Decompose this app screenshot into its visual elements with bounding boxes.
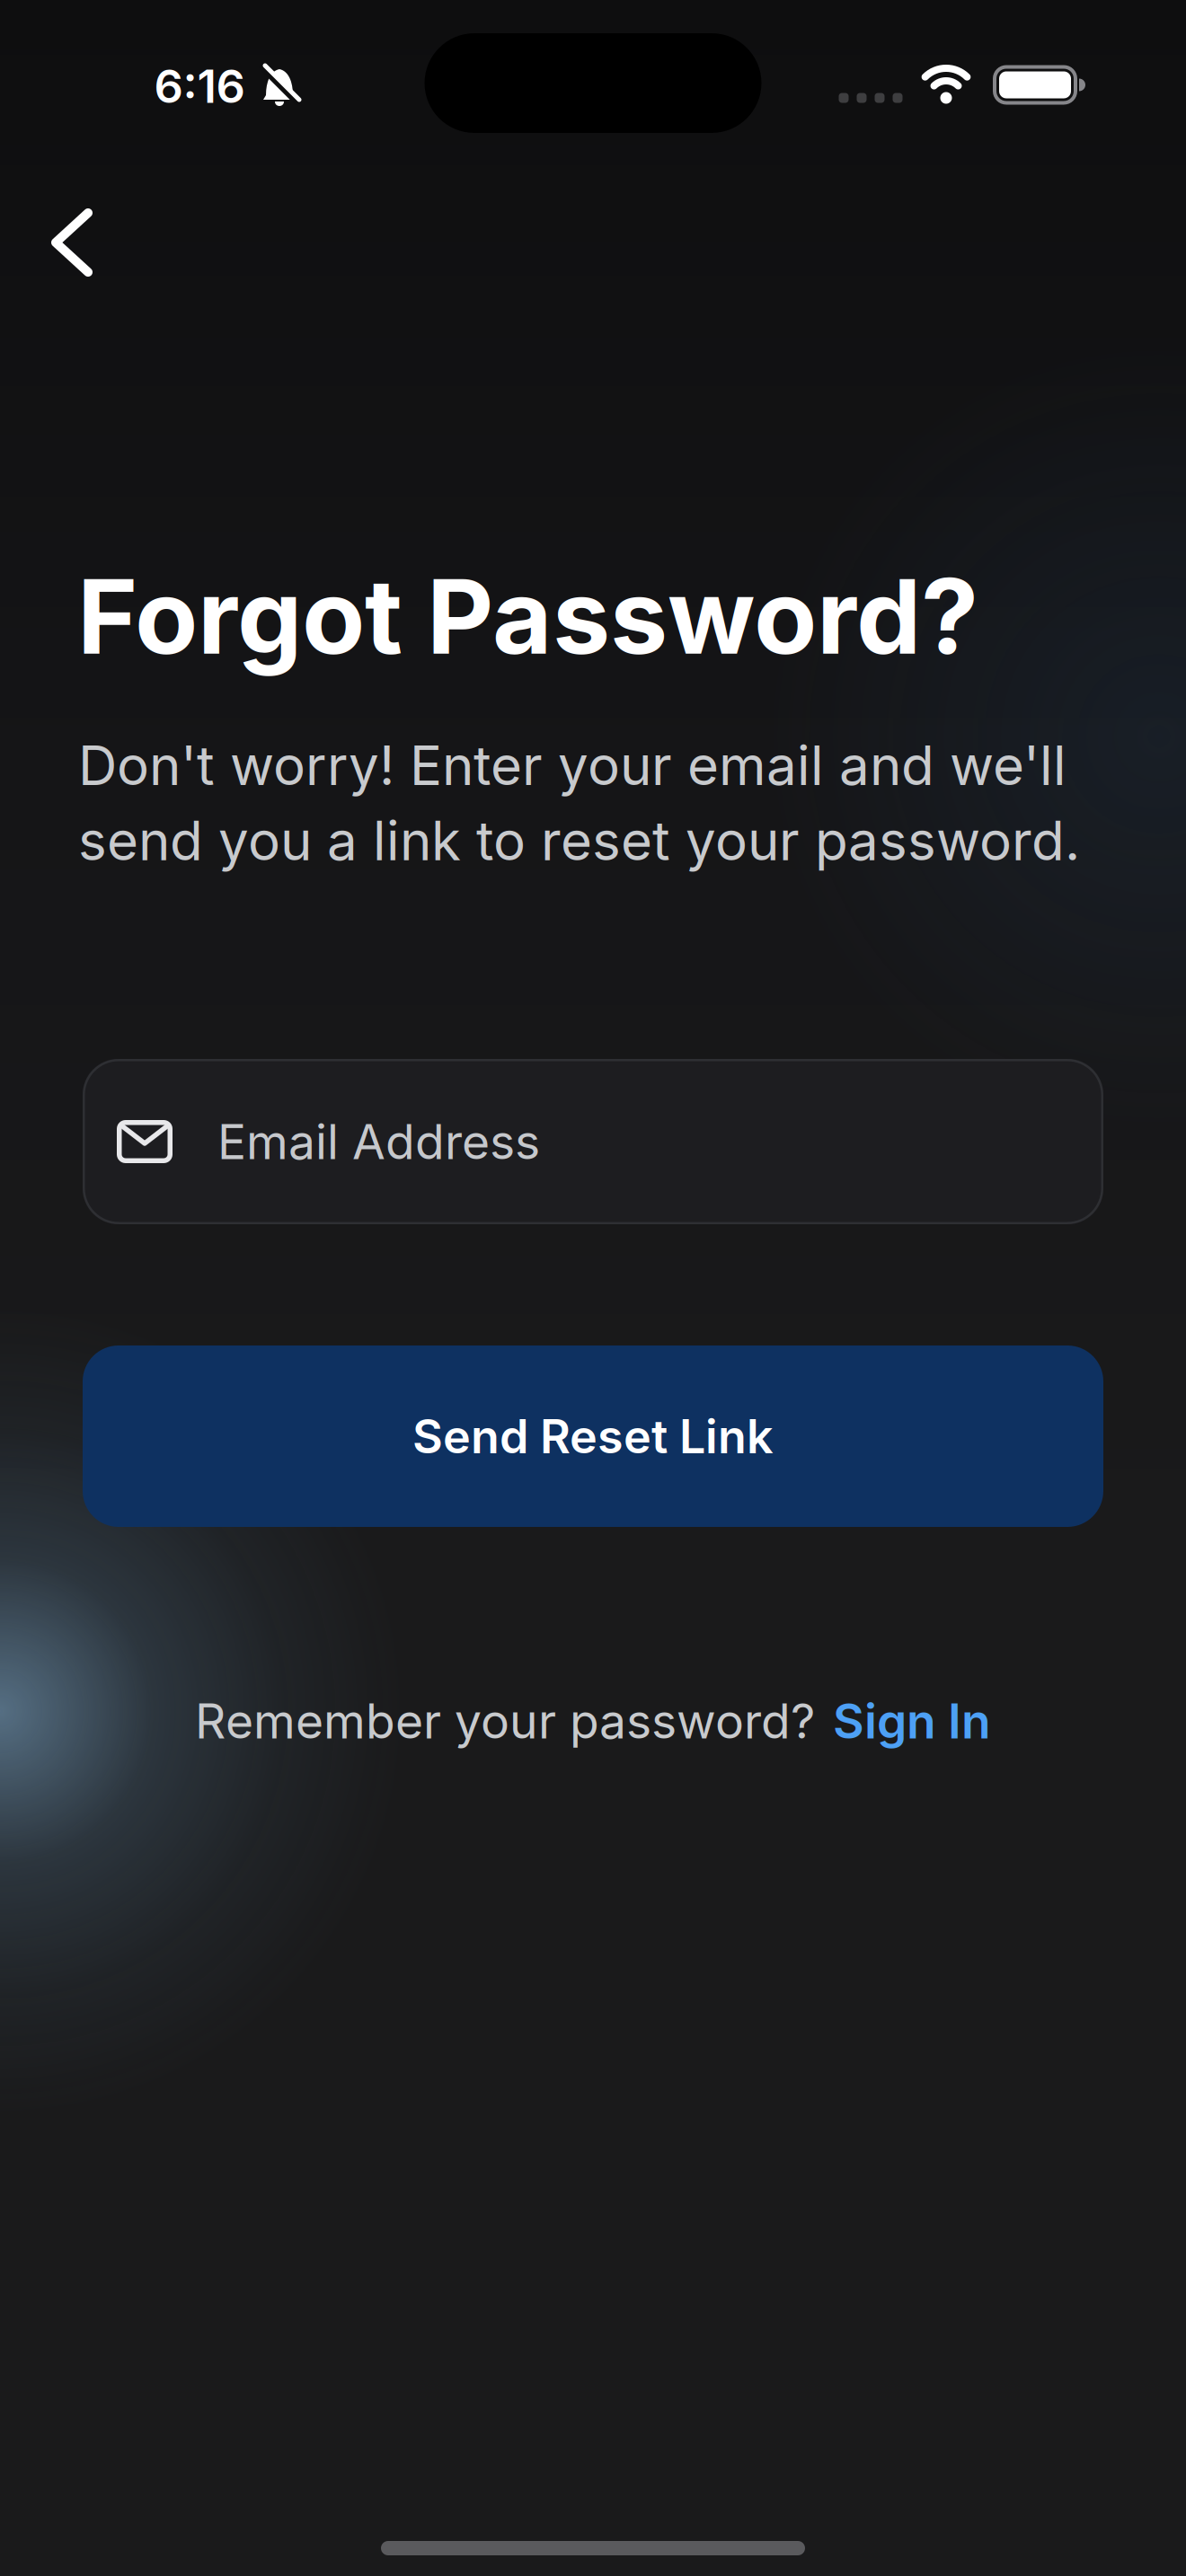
button[interactable]: Back [49, 202, 102, 283]
button[interactable]: Send Reset Link [83, 1345, 1103, 1527]
staticText: Send Reset Link [412, 1409, 774, 1464]
button[interactable]: Sign In [833, 1693, 991, 1749]
staticText: Sign In [833, 1693, 991, 1749]
staticText: 6:16 [154, 59, 245, 113]
button[interactable]: Email Address [83, 1059, 1103, 1224]
staticText: Don't worry! Enter your email and we'll … [78, 734, 1080, 872]
staticText: Forgot Password? [77, 555, 978, 677]
staticText: Email Address [217, 1113, 540, 1170]
staticText: Remember your password? [195, 1693, 815, 1749]
